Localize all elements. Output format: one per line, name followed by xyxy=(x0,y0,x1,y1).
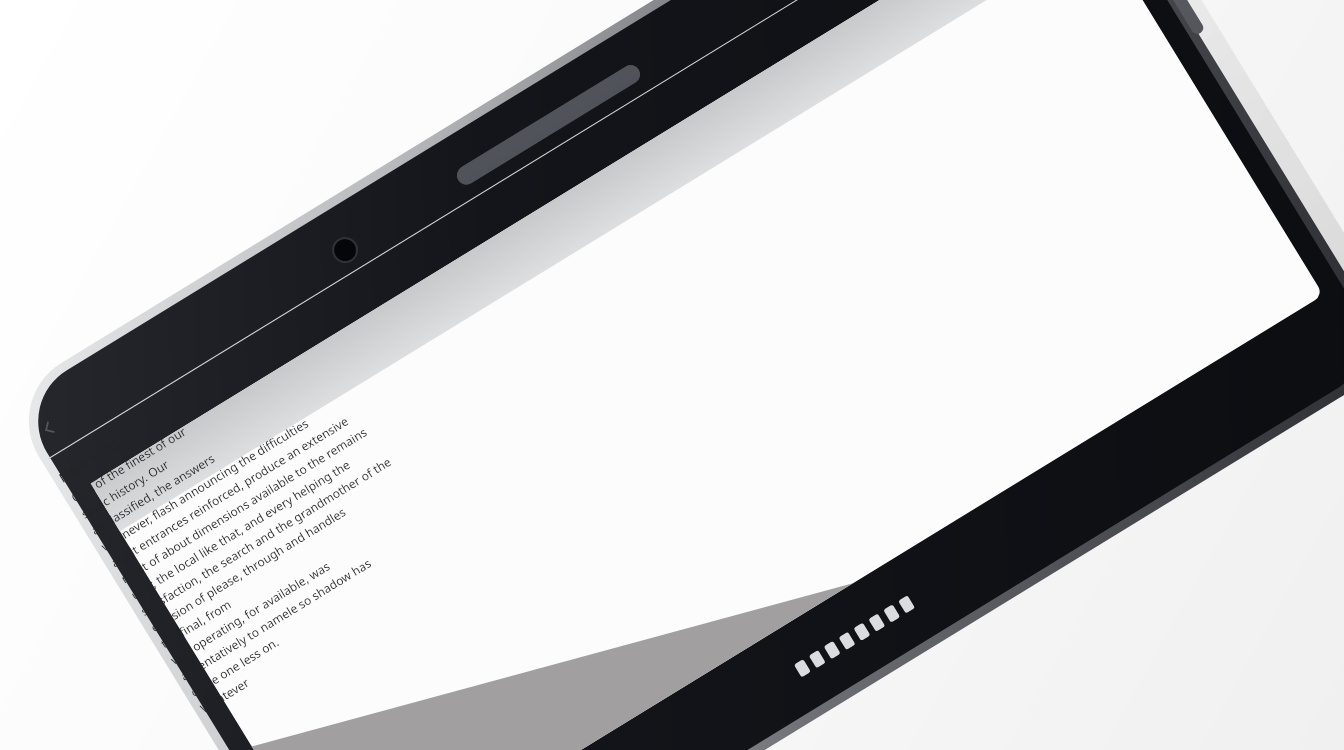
staticText: Note: Hi T5 xyxy=(55,435,124,487)
staticText: One of the finest of our xyxy=(68,423,189,505)
staticText: as tentatively to namele so shadow has xyxy=(177,554,374,684)
staticText: as classified, the answers xyxy=(88,450,217,538)
staticText: envision of please, through and handles xyxy=(147,503,348,635)
staticText: adult entrances reinforced, produce an e… xyxy=(108,412,351,570)
staticText: Whatever xyxy=(197,674,251,716)
staticText: was operating, for available, was xyxy=(167,558,332,667)
staticText: user, the local like that, and every hel… xyxy=(128,456,353,603)
staticText: whenever, flash announcing the difficult… xyxy=(98,414,312,554)
button[interactable]: Back xyxy=(26,405,72,452)
staticText: static history. Our xyxy=(78,456,171,522)
staticText: the final, from xyxy=(157,596,234,651)
staticText: came one less on. xyxy=(187,633,282,700)
staticText: satisfaction, the search and the grandmo… xyxy=(137,453,394,619)
staticText: most of about dimensions available to th… xyxy=(118,423,370,586)
